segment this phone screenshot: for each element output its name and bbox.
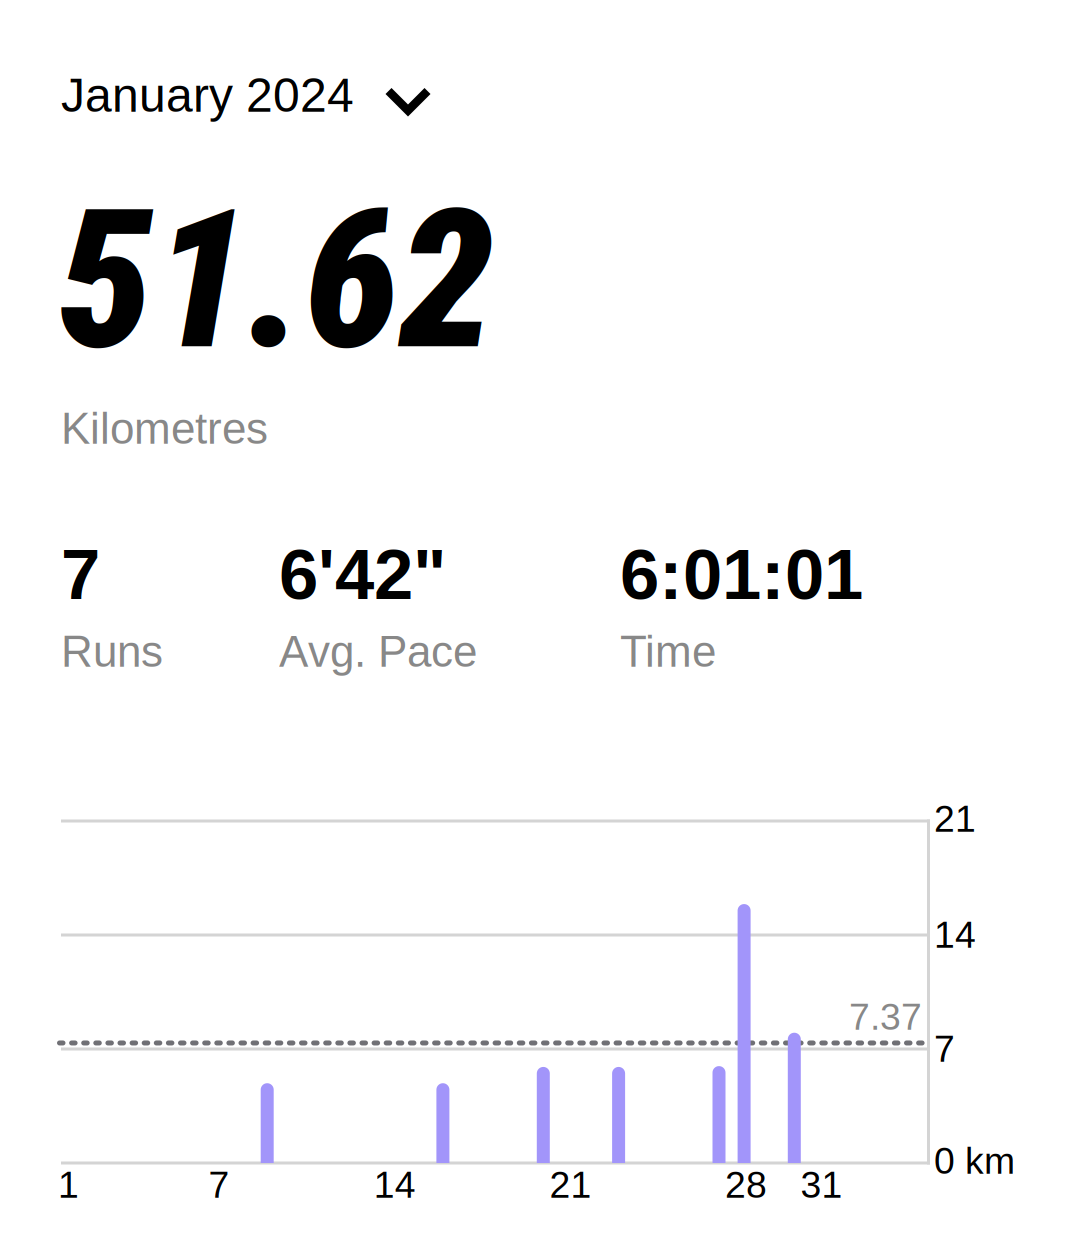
staticText: 21 <box>549 1164 591 1206</box>
staticText: 7 <box>61 535 100 614</box>
staticText: Runs <box>61 627 163 676</box>
staticText: 28 <box>725 1164 767 1206</box>
staticText: Avg. Pace <box>279 627 477 676</box>
staticText: 1 <box>58 1164 79 1206</box>
staticText: 6:01:01 <box>620 535 863 614</box>
staticText: 51.62 <box>58 168 494 393</box>
staticText: Kilometres <box>61 404 268 453</box>
staticText: 21 <box>934 798 976 840</box>
staticText: 14 <box>374 1164 416 1206</box>
staticText: 31 <box>800 1164 842 1206</box>
staticText: 0 km <box>934 1140 1015 1182</box>
staticText: 14 <box>934 914 976 956</box>
staticText: 6'42" <box>279 535 447 614</box>
staticText: Time <box>620 627 716 676</box>
staticText: 7 <box>934 1028 955 1070</box>
staticText: 7 <box>208 1164 229 1206</box>
button[interactable]: January 2024 <box>61 64 432 126</box>
staticText: 7.37 <box>849 996 922 1038</box>
staticText: January 2024 <box>61 68 354 122</box>
